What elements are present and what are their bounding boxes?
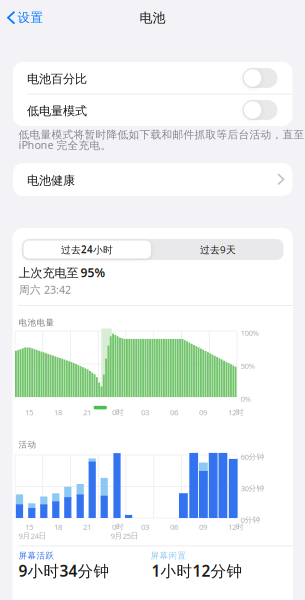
staticText: 活动 <box>18 439 36 450</box>
staticText: 低电量模式 <box>27 103 87 118</box>
staticText: 15 <box>25 521 33 532</box>
staticText: 屏幕活跃 <box>18 550 54 561</box>
staticText: 09 <box>199 521 207 532</box>
staticText: 12时 <box>228 407 244 417</box>
staticText: 9月24日 <box>18 530 46 541</box>
button[interactable]: 返回设置 <box>8 10 43 25</box>
staticText: 12时 <box>228 521 244 532</box>
staticText: 0时 <box>112 521 124 532</box>
staticText: 21 <box>83 521 91 532</box>
button[interactable]: 低电量模式 <box>13 94 292 126</box>
staticText: 电池百分比 <box>27 71 87 86</box>
staticText: 设置 <box>17 10 43 25</box>
staticText: 过去24小时 <box>61 243 113 256</box>
staticText: 1小时12分钟 <box>151 560 242 581</box>
staticText: 15 <box>25 407 33 417</box>
staticText: 03 <box>141 407 149 417</box>
staticText: 09 <box>199 407 207 417</box>
staticText: 50% <box>240 360 254 371</box>
staticText: 60分钟 <box>240 451 264 462</box>
staticText: 0时 <box>112 407 124 417</box>
staticText: 9小时34分钟 <box>18 560 109 581</box>
staticText: 03 <box>141 521 149 532</box>
staticText: 0分钟 <box>240 514 260 525</box>
staticText: 30分钟 <box>240 483 264 493</box>
staticText: 0% <box>240 393 250 404</box>
button[interactable]: 过去9天 <box>153 239 283 260</box>
staticText: 06 <box>170 521 178 532</box>
staticText: 电池健康 <box>27 173 75 188</box>
button[interactable]: 开关 <box>242 100 277 120</box>
staticText: 上次充电至 95% <box>18 264 105 281</box>
button[interactable]: 开关 <box>242 68 277 88</box>
staticText: 9月25日 <box>110 530 138 541</box>
staticText: 电池电量 <box>18 317 54 328</box>
staticText: 过去9天 <box>200 243 236 256</box>
staticText: 21 <box>83 407 91 417</box>
staticText: 18 <box>54 521 62 532</box>
staticText: 18 <box>54 407 62 417</box>
staticText: 06 <box>170 407 178 417</box>
staticText: 周六 23:42 <box>19 282 71 297</box>
button[interactable]: 电池百分比 <box>13 62 292 94</box>
staticText: 低电量模式将暂时降低如下载和邮件抓取等后台活动，直至 iPhone 完全充电。 <box>18 130 304 150</box>
button[interactable]: 电池健康 <box>13 163 292 196</box>
staticText: 电池 <box>139 10 165 26</box>
staticText: 100% <box>240 327 258 338</box>
button[interactable]: 过去24小时 <box>22 239 152 260</box>
staticText: 屏幕闲置 <box>150 550 186 561</box>
